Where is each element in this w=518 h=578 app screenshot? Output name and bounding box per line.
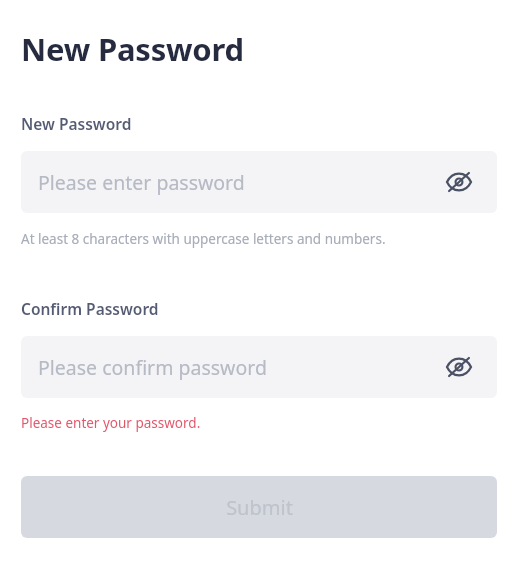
button[interactable]: Show new password bbox=[442, 165, 476, 199]
button[interactable]: Show confirm password bbox=[442, 350, 476, 384]
staticText: Submit bbox=[226, 494, 293, 521]
staticText: Confirm Password bbox=[21, 298, 159, 319]
staticText: New Password bbox=[21, 28, 244, 70]
staticText: New Password bbox=[21, 113, 132, 134]
staticText: Please enter your password. bbox=[21, 414, 201, 432]
button[interactable]: Please enter password bbox=[21, 151, 497, 213]
button[interactable]: Please confirm password bbox=[21, 336, 497, 398]
staticText: At least 8 characters with uppercase let… bbox=[21, 230, 386, 248]
staticText: Please confirm password bbox=[38, 354, 267, 381]
staticText: Please enter password bbox=[38, 169, 245, 196]
